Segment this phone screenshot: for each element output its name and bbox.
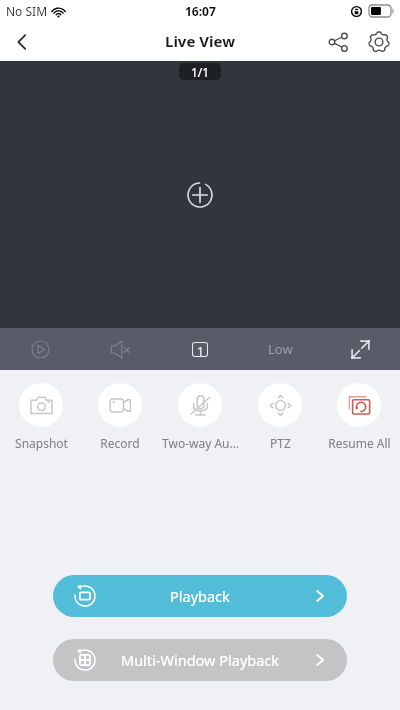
button[interactable]: Window layout [160, 328, 240, 370]
staticText: Resume All [328, 435, 391, 451]
button[interactable]: Multi-Window Playback [53, 639, 347, 681]
button[interactable]: Snapshot [2, 383, 80, 451]
staticText: Live View [165, 31, 236, 51]
button[interactable]: Mute [80, 328, 160, 370]
button[interactable]: Playback [53, 575, 347, 617]
button[interactable]: Share [318, 22, 358, 61]
staticText: Two-way Au… [162, 435, 239, 451]
button[interactable]: PTZ [241, 383, 319, 451]
staticText: PTZ [270, 435, 291, 451]
button[interactable]: Resume All [320, 383, 398, 451]
staticText: No SIM [6, 3, 48, 19]
button[interactable]: Fullscreen [320, 328, 400, 370]
staticText: Playback [170, 586, 230, 606]
button[interactable]: Play [0, 328, 80, 370]
staticText: 1 [197, 343, 204, 356]
staticText: Low [268, 340, 293, 358]
staticText: 16:07 [185, 3, 216, 19]
button[interactable]: Two-way Au… [161, 383, 239, 451]
staticText: Snapshot [15, 435, 68, 451]
button[interactable]: Back [0, 22, 44, 61]
button[interactable]: Low [240, 328, 320, 370]
staticText: Record [100, 435, 140, 451]
button[interactable]: Record [81, 383, 159, 451]
staticText: Multi-Window Playback [121, 650, 280, 670]
staticText: 1/1 [191, 64, 210, 80]
button[interactable]: Settings [358, 22, 400, 61]
button[interactable]: Add camera [180, 175, 220, 215]
